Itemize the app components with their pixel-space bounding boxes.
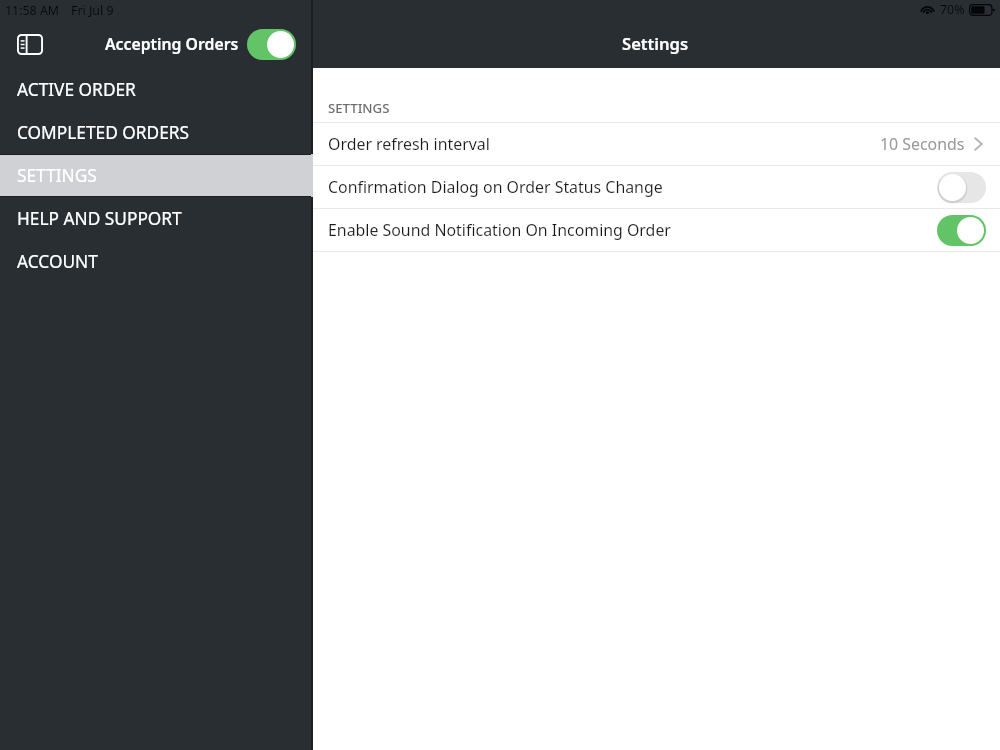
button[interactable]: Toggle sidebar <box>16 31 44 57</box>
staticText: 10 Seconds <box>880 133 965 155</box>
staticText: SETTINGS <box>328 99 390 117</box>
button[interactable]: ACTIVE ORDER <box>0 68 311 111</box>
staticText: ACTIVE ORDER <box>17 78 136 102</box>
button[interactable]: HELP AND SUPPORT <box>0 197 311 240</box>
staticText: Accepting Orders <box>105 33 239 55</box>
button[interactable]: COMPLETED ORDERS <box>0 111 311 154</box>
staticText: COMPLETED ORDERS <box>17 121 190 145</box>
staticText: ACCOUNT <box>17 250 98 274</box>
button[interactable]: ACCOUNT <box>0 240 311 283</box>
staticText: HELP AND SUPPORT <box>17 207 182 231</box>
staticText: 11:58 AM <box>5 2 60 19</box>
button[interactable]: Confirmation Dialog on Order Status Chan… <box>937 172 986 203</box>
staticText: Enable Sound Notification On Incoming Or… <box>328 219 671 241</box>
staticText: SETTINGS <box>17 164 97 188</box>
button[interactable]: SETTINGS <box>0 154 311 197</box>
staticText: Fri Jul 9 <box>71 2 114 19</box>
button[interactable]: Accepting Orders <box>247 29 296 60</box>
staticText: Order refresh interval <box>328 133 490 155</box>
staticText: Confirmation Dialog on Order Status Chan… <box>328 176 663 198</box>
staticText: 70% <box>940 1 965 18</box>
button[interactable]: Order refresh interval <box>311 123 1000 165</box>
button[interactable]: Enable Sound Notification On Incoming Or… <box>937 215 986 246</box>
staticText: Settings <box>622 32 689 55</box>
